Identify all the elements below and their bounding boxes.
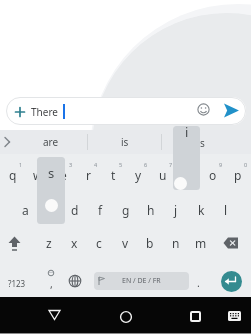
staticText: e xyxy=(60,167,67,183)
button[interactable]: , xyxy=(37,273,65,295)
button[interactable] xyxy=(223,103,240,118)
button[interactable]: h xyxy=(137,199,165,221)
staticText: , xyxy=(50,277,53,291)
button[interactable]: y xyxy=(124,164,152,186)
button[interactable]: n xyxy=(162,232,190,254)
staticText: s xyxy=(48,164,55,182)
staticText: i xyxy=(185,123,189,141)
button[interactable]: v xyxy=(111,232,139,254)
button[interactable]: ?123 xyxy=(3,272,31,294)
button[interactable]: x xyxy=(60,232,88,254)
button[interactable]: q xyxy=(0,164,27,186)
button[interactable]: g xyxy=(112,199,140,221)
button[interactable]: b xyxy=(136,232,164,254)
staticText: o xyxy=(209,167,217,183)
staticText: q xyxy=(9,167,17,183)
staticText: k xyxy=(198,202,205,218)
staticText: p xyxy=(234,167,242,183)
staticText: v xyxy=(122,235,129,251)
button[interactable]: p xyxy=(224,164,251,186)
button[interactable]: f xyxy=(86,199,114,221)
button[interactable]: o xyxy=(199,164,227,186)
button[interactable]: . xyxy=(184,272,212,294)
button[interactable]: t xyxy=(99,164,127,186)
button[interactable]: s xyxy=(188,132,216,154)
staticText: 5 xyxy=(119,161,123,168)
staticText: ?123 xyxy=(8,278,26,289)
button[interactable]: r xyxy=(74,164,102,186)
button[interactable]: w xyxy=(24,164,52,186)
staticText: 0 xyxy=(244,161,248,168)
staticText: n xyxy=(172,235,180,251)
staticText: s xyxy=(47,202,53,218)
staticText: 4 xyxy=(94,161,98,168)
staticText: j xyxy=(174,202,178,218)
staticText: u xyxy=(159,167,167,183)
button[interactable]: z xyxy=(35,232,63,254)
staticText: There xyxy=(31,105,58,119)
staticText: c xyxy=(96,235,102,251)
button[interactable] xyxy=(221,271,242,292)
button[interactable] xyxy=(6,97,246,125)
staticText: h xyxy=(147,202,155,218)
button[interactable]: a xyxy=(11,199,39,221)
staticText: y xyxy=(135,167,142,183)
staticText: l xyxy=(224,202,228,218)
button[interactable]: d xyxy=(61,199,89,221)
staticText: 1 xyxy=(19,161,23,168)
button[interactable] xyxy=(6,235,23,252)
staticText: t xyxy=(111,167,116,183)
staticText: a xyxy=(22,202,29,218)
staticText: z xyxy=(46,235,52,251)
button[interactable]: e xyxy=(49,164,77,186)
staticText: are xyxy=(43,135,59,149)
button[interactable] xyxy=(190,311,201,322)
button[interactable] xyxy=(68,274,82,288)
button[interactable]: c xyxy=(85,232,113,254)
staticText: f xyxy=(98,202,103,218)
button[interactable] xyxy=(94,272,189,290)
staticText: d xyxy=(71,202,79,218)
button[interactable]: is xyxy=(111,131,139,153)
staticText: i xyxy=(186,167,190,183)
staticText: m xyxy=(195,235,207,251)
button[interactable]: k xyxy=(187,199,215,221)
button[interactable] xyxy=(119,310,133,324)
staticText: . xyxy=(197,276,200,290)
staticText: 3 xyxy=(69,161,73,168)
staticText: s xyxy=(200,136,205,150)
staticText: b xyxy=(146,235,154,251)
button[interactable] xyxy=(48,309,61,321)
button[interactable]: i xyxy=(174,164,202,186)
staticText: 7 xyxy=(169,161,173,168)
staticText: 9 xyxy=(219,161,223,168)
staticText: is xyxy=(121,135,129,149)
button[interactable]: m xyxy=(187,232,215,254)
staticText: x xyxy=(71,235,78,251)
button[interactable]: j xyxy=(162,199,190,221)
button[interactable] xyxy=(228,311,241,321)
button[interactable]: s xyxy=(36,199,64,221)
button[interactable]: u xyxy=(149,164,177,186)
staticText: w xyxy=(33,167,43,183)
button[interactable] xyxy=(223,237,240,249)
button[interactable]: l xyxy=(212,199,240,221)
staticText: 6 xyxy=(144,161,148,168)
button[interactable]: are xyxy=(37,131,65,153)
staticText: EN / DE / FR xyxy=(122,276,161,286)
staticText: g xyxy=(122,202,130,218)
staticText: r xyxy=(86,167,91,183)
